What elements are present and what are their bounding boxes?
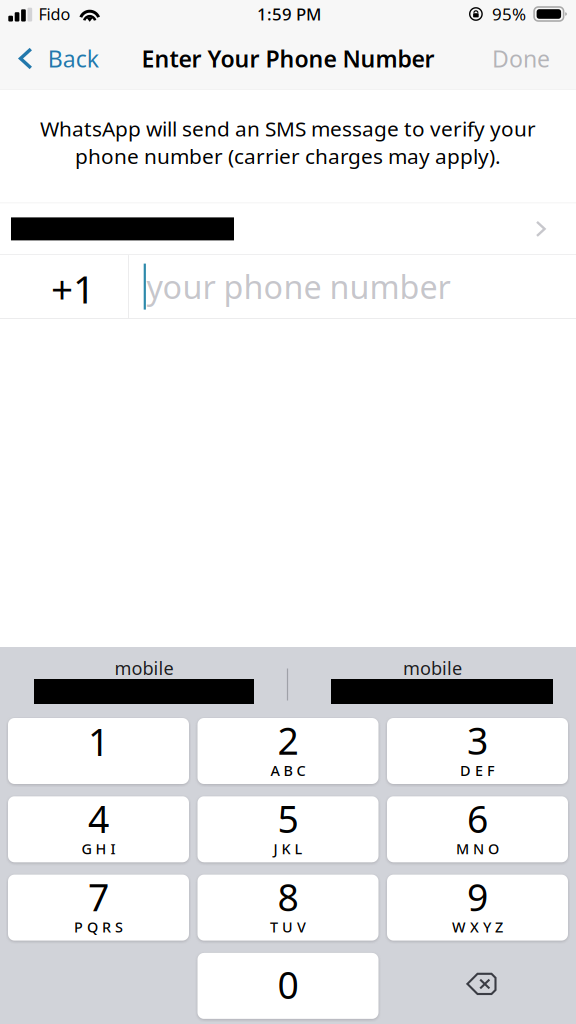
- staticText: M N O: [456, 839, 499, 858]
- staticText: 7: [88, 871, 109, 922]
- staticText: 3: [467, 715, 488, 766]
- staticText: +1: [51, 262, 95, 315]
- staticText: Fido: [38, 3, 70, 25]
- button[interactable]: 0: [197, 953, 378, 1019]
- staticText: Back: [48, 43, 99, 74]
- button[interactable]: 2: [197, 718, 378, 784]
- staticText: 1: [88, 716, 109, 767]
- staticText: T U V: [270, 917, 306, 937]
- staticText: P Q R S: [74, 917, 123, 937]
- button[interactable]: 7: [8, 875, 189, 941]
- staticText: Done: [492, 43, 550, 74]
- staticText: 5: [277, 793, 298, 844]
- button[interactable]: 8: [197, 875, 378, 941]
- staticText: 9: [467, 871, 488, 922]
- button[interactable]: 5: [197, 796, 378, 862]
- staticText: 1:59 PM: [257, 3, 321, 25]
- staticText: 0: [277, 959, 298, 1010]
- button[interactable]: mobile: [288, 647, 576, 718]
- button[interactable]: mobile: [0, 647, 288, 718]
- staticText: 4: [88, 793, 109, 844]
- staticText: A B C: [270, 761, 305, 780]
- staticText: Enter Your Phone Number: [141, 43, 434, 74]
- button[interactable]: Delete: [387, 953, 568, 1019]
- staticText: W X Y Z: [452, 917, 503, 937]
- staticText: 8: [277, 871, 298, 922]
- button[interactable]: Done: [478, 38, 576, 89]
- button[interactable]: 6: [387, 796, 568, 862]
- button[interactable]: 1: [8, 718, 189, 784]
- staticText: D E F: [460, 761, 495, 780]
- button[interactable]: Back: [0, 38, 111, 89]
- staticText: 2: [277, 715, 298, 766]
- button[interactable]: 4: [8, 796, 189, 862]
- staticText: G H I: [81, 839, 115, 858]
- button[interactable]: Select country: [0, 203, 576, 254]
- button[interactable]: 9: [387, 875, 568, 941]
- staticText: mobile: [114, 656, 173, 680]
- staticText: WhatsApp will send an SMS message to ver…: [40, 114, 536, 143]
- staticText: 95%: [492, 2, 526, 26]
- staticText: mobile: [403, 656, 462, 680]
- staticText: J K L: [273, 839, 302, 858]
- staticText: phone number (carrier charges may apply)…: [75, 142, 501, 170]
- staticText: your phone number: [146, 265, 450, 308]
- staticText: 6: [467, 793, 488, 844]
- button[interactable]: 3: [387, 718, 568, 784]
